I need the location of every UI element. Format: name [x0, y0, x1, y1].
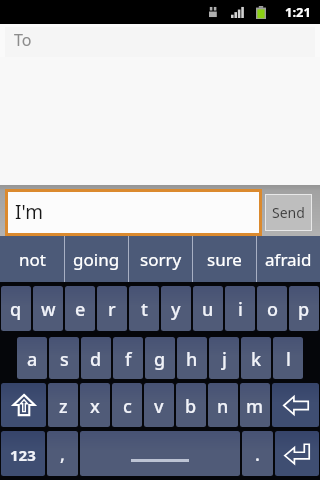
- button[interactable]: going: [65, 236, 128, 282]
- button[interactable]: Send: [266, 195, 311, 230]
- button[interactable]: x: [80, 383, 110, 427]
- staticText: sorry: [140, 248, 182, 271]
- staticText: t: [141, 297, 148, 322]
- button[interactable]: w: [33, 286, 63, 331]
- button[interactable]: e: [65, 286, 95, 331]
- button[interactable]: c: [112, 383, 142, 427]
- button[interactable]: not: [0, 236, 64, 282]
- staticText: j: [222, 347, 227, 372]
- button[interactable]: d: [81, 337, 111, 379]
- staticText: y: [171, 297, 181, 322]
- staticText: m: [246, 394, 264, 419]
- staticText: z: [59, 394, 68, 419]
- button[interactable]: .: [242, 431, 273, 476]
- button[interactable]: To: [5, 27, 315, 57]
- staticText: o: [267, 297, 278, 322]
- staticText: i: [238, 297, 243, 322]
- staticText: r: [108, 297, 116, 322]
- staticText: f: [125, 347, 132, 372]
- staticText: c: [123, 394, 132, 419]
- button[interactable]: q: [1, 286, 31, 331]
- button[interactable]: n: [208, 383, 238, 427]
- staticText: q: [10, 297, 22, 322]
- button[interactable]: sorry: [129, 236, 192, 282]
- button[interactable]: ,: [47, 431, 78, 476]
- button[interactable]: g: [145, 337, 175, 379]
- staticText: e: [75, 297, 86, 322]
- button[interactable]: v: [144, 383, 174, 427]
- staticText: b: [185, 394, 197, 419]
- staticText: a: [27, 347, 38, 372]
- button[interactable]: l: [273, 337, 303, 379]
- button[interactable]: f: [113, 337, 143, 379]
- staticText: n: [217, 394, 229, 419]
- button[interactable]: z: [48, 383, 78, 427]
- staticText: l: [286, 347, 291, 372]
- button[interactable]: sure: [193, 236, 256, 282]
- staticText: .: [255, 442, 260, 467]
- staticText: s: [60, 347, 69, 372]
- button[interactable]: m: [240, 383, 270, 427]
- staticText: d: [90, 347, 102, 372]
- staticText: k: [251, 347, 262, 372]
- staticText: x: [90, 394, 100, 419]
- button[interactable]: b: [176, 383, 206, 427]
- button[interactable]: t: [129, 286, 159, 331]
- button[interactable]: i: [225, 286, 255, 331]
- staticText: afraid: [265, 248, 312, 271]
- button[interactable]: o: [257, 286, 287, 331]
- staticText: g: [154, 347, 166, 372]
- button[interactable]: p: [289, 286, 319, 331]
- button[interactable]: r: [97, 286, 127, 331]
- staticText: w: [41, 297, 56, 322]
- staticText: going: [73, 248, 120, 271]
- staticText: I'm: [15, 199, 43, 225]
- staticText: 1:21: [285, 3, 311, 21]
- button[interactable]: Enter: [275, 431, 319, 476]
- staticText: u: [202, 297, 214, 322]
- button[interactable]: u: [193, 286, 223, 331]
- staticText: h: [186, 347, 198, 372]
- button[interactable]: Space: [80, 431, 240, 476]
- button[interactable]: Backspace: [272, 383, 319, 427]
- button[interactable]: k: [241, 337, 271, 379]
- button[interactable]: Shift: [1, 383, 46, 427]
- staticText: Send: [272, 203, 305, 222]
- staticText: ,: [60, 442, 65, 467]
- staticText: 123: [10, 445, 36, 465]
- button[interactable]: I'm: [8, 192, 259, 233]
- staticText: v: [154, 394, 164, 419]
- staticText: p: [298, 297, 310, 322]
- staticText: To: [14, 29, 32, 51]
- button[interactable]: a: [17, 337, 47, 379]
- button[interactable]: 123: [1, 431, 45, 476]
- button[interactable]: s: [49, 337, 79, 379]
- staticText: sure: [207, 248, 242, 271]
- button[interactable]: j: [209, 337, 239, 379]
- button[interactable]: afraid: [257, 236, 320, 282]
- staticText: not: [19, 248, 46, 271]
- button[interactable]: h: [177, 337, 207, 379]
- button[interactable]: y: [161, 286, 191, 331]
